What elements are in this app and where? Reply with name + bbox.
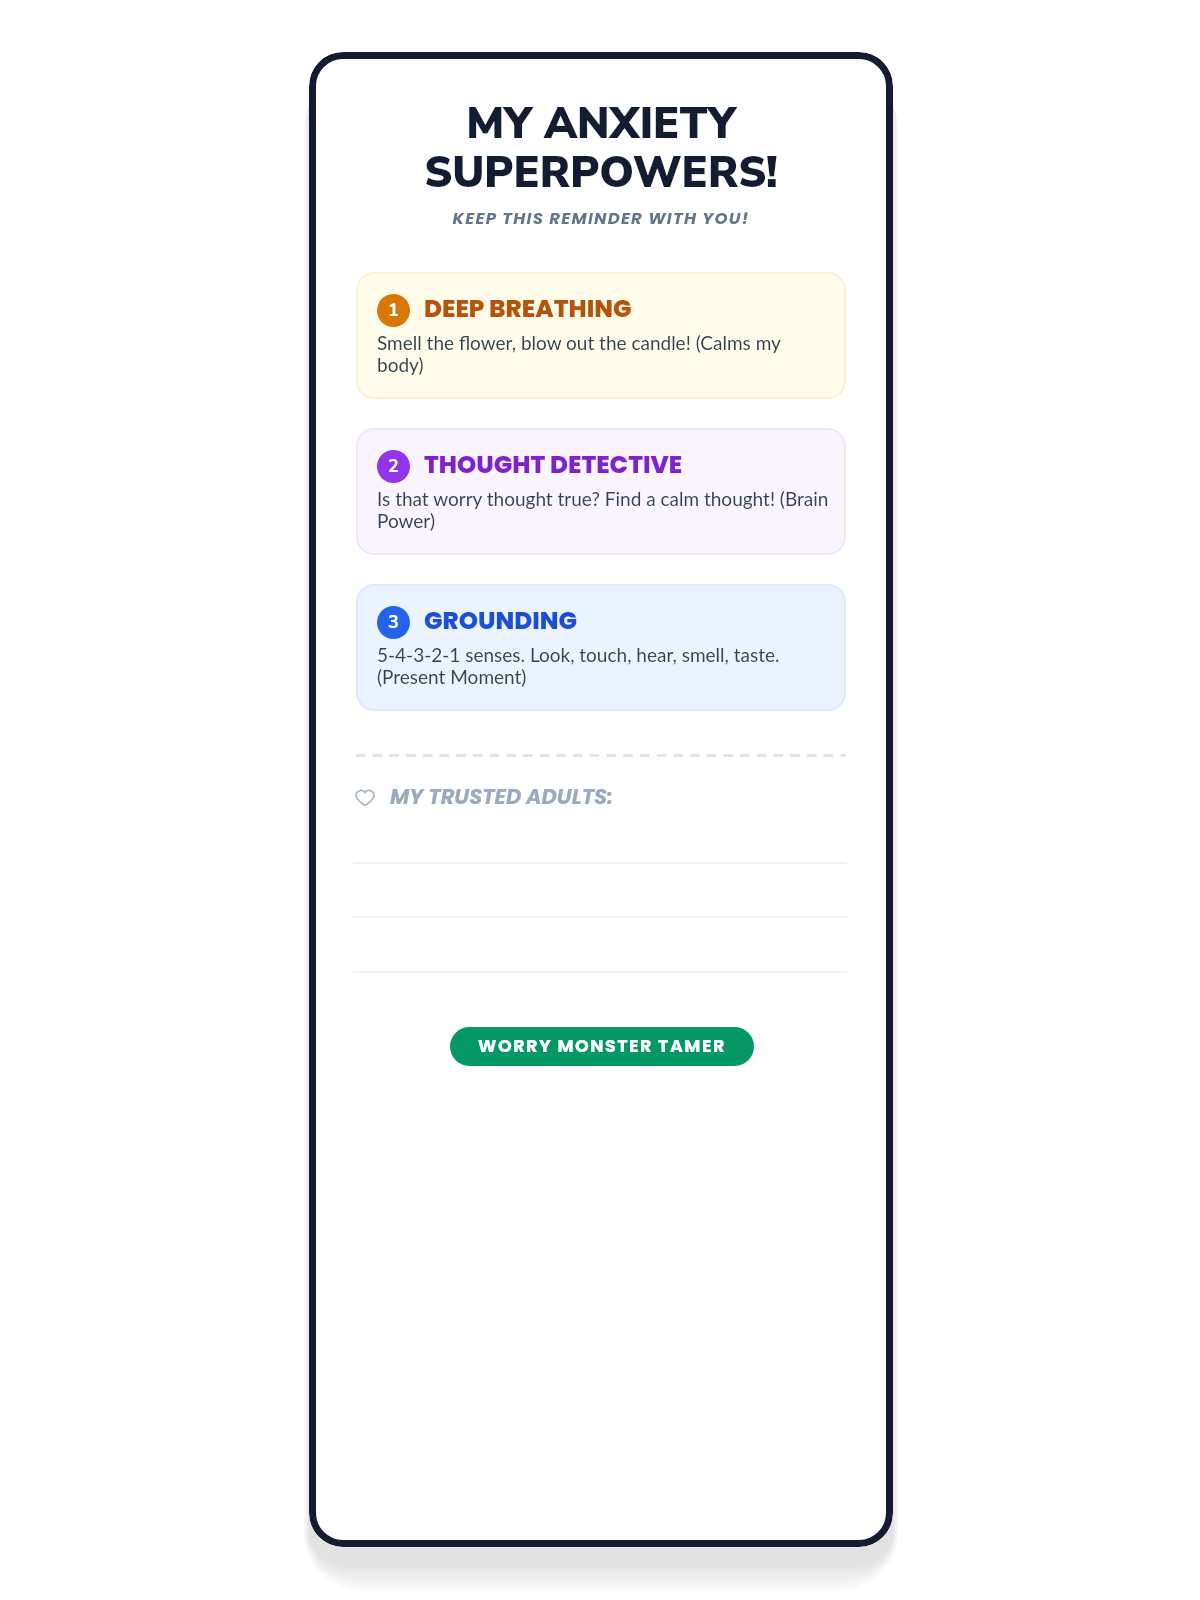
staticText: Is that worry thought true? Find a calm … — [377, 487, 829, 532]
staticText: THOUGHT DETECTIVE — [424, 447, 683, 481]
staticText: 2 — [388, 454, 399, 479]
other: Favourite — [354, 788, 376, 806]
staticText: 5-4-3-2-1 senses. Look, touch, hear, sme… — [377, 643, 829, 688]
staticText: WORRY MONSTER TAMER — [478, 1034, 726, 1059]
staticText: MY TRUSTED ADULTS: — [390, 782, 614, 811]
staticText: Smell the flower, blow out the candle! (… — [377, 331, 829, 376]
button[interactable]: WORRY MONSTER TAMER — [450, 1027, 754, 1066]
button[interactable]: 1 — [356, 272, 846, 399]
button[interactable]: 3 — [356, 584, 846, 711]
staticText: KEEP THIS REMINDER WITH YOU! — [309, 207, 893, 230]
staticText: DEEP BREATHING — [424, 291, 632, 325]
staticText: GROUNDING — [424, 603, 578, 637]
button[interactable]: 2 — [356, 428, 846, 555]
staticText: 1 — [388, 298, 399, 323]
staticText: 3 — [388, 610, 399, 635]
staticText: MY ANXIETY SUPERPOWERS! — [309, 95, 893, 202]
